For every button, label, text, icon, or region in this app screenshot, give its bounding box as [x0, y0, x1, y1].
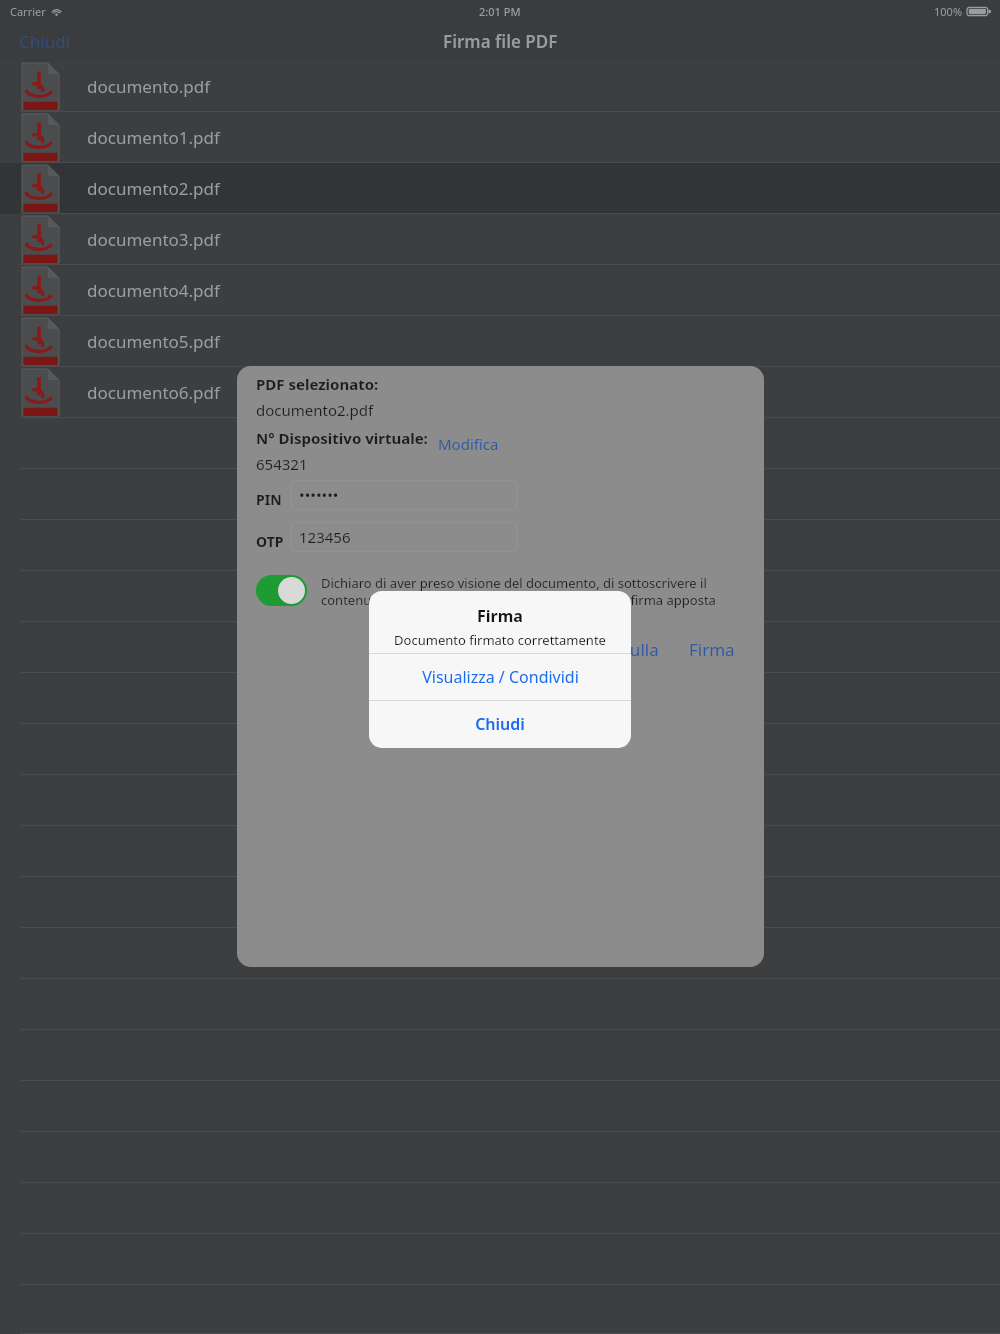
staticText: Documento firmato correttamente: [394, 631, 606, 649]
button[interactable]: documento.pdf: [0, 61, 1000, 112]
staticText: documento.pdf: [87, 75, 211, 98]
button[interactable]: Dichiaro di aver preso visione del docum…: [256, 575, 307, 606]
button[interactable]: Modifica: [430, 430, 507, 458]
button[interactable]: Annulla: [588, 632, 669, 667]
staticText: Firma file PDF: [443, 30, 558, 53]
staticText: Firma: [477, 605, 523, 627]
staticText: Annulla: [598, 638, 659, 661]
staticText: 654321: [256, 454, 308, 474]
staticText: documento6.pdf: [87, 381, 220, 404]
staticText: 2:01 PM: [479, 4, 521, 19]
button[interactable]: documento6.pdf: [0, 367, 1000, 418]
staticText: Visualizza / Condividi: [422, 666, 579, 688]
staticText: documento3.pdf: [87, 228, 220, 251]
button[interactable]: Firma: [679, 632, 745, 667]
button[interactable]: documento3.pdf: [0, 214, 1000, 265]
button[interactable]: documento1.pdf: [0, 112, 1000, 163]
staticText: PDF selezionato:: [256, 374, 379, 394]
staticText: 100%: [934, 4, 963, 19]
button[interactable]: Chiudi: [369, 701, 631, 747]
staticText: documento2.pdf: [87, 177, 220, 200]
staticText: OTP: [256, 532, 284, 551]
staticText: documento2.pdf: [256, 400, 374, 420]
staticText: Dichiaro di aver preso visione del docum…: [321, 574, 746, 609]
staticText: documento5.pdf: [87, 330, 220, 353]
button[interactable]: documento2.pdf: [0, 163, 1000, 214]
staticText: documento1.pdf: [87, 126, 220, 149]
staticText: Firma: [689, 638, 735, 661]
button[interactable]: 123456: [291, 522, 517, 552]
button[interactable]: Chiudi: [0, 22, 89, 61]
staticText: 123456: [299, 527, 351, 547]
button[interactable]: documento5.pdf: [0, 316, 1000, 367]
staticText: Chiudi: [475, 713, 525, 735]
button[interactable]: documento4.pdf: [0, 265, 1000, 316]
button[interactable]: Visualizza / Condividi: [369, 654, 631, 700]
staticText: •••••••: [299, 485, 339, 505]
staticText: Carrier: [10, 4, 46, 19]
staticText: N° Dispositivo virtuale:: [256, 428, 428, 448]
staticText: Modifica: [438, 434, 499, 454]
button[interactable]: •••••••: [291, 480, 517, 510]
staticText: documento4.pdf: [87, 279, 220, 302]
staticText: Chiudi: [19, 30, 70, 53]
staticText: PIN: [256, 490, 282, 509]
